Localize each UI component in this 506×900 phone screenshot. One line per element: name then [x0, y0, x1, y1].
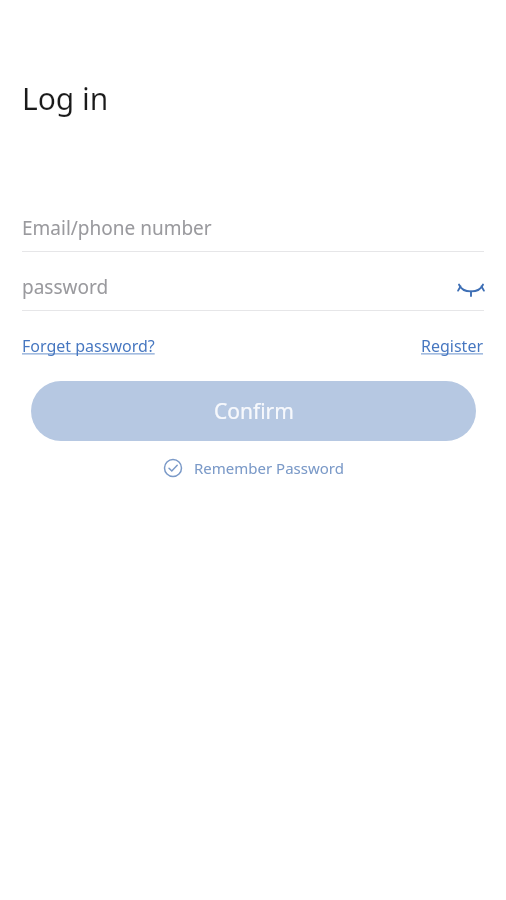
button[interactable]: Forget password? [22, 335, 155, 357]
button[interactable]: Confirm [31, 381, 476, 441]
button[interactable]: Email/phone number [0, 205, 506, 251]
button[interactable]: password [0, 264, 506, 310]
staticText: Register [421, 335, 484, 357]
staticText: Email/phone number [22, 215, 212, 241]
button[interactable]: Register [421, 335, 484, 357]
staticText: Forget password? [22, 335, 155, 357]
staticText: password [22, 274, 454, 300]
button[interactable]: Remember Password [158, 454, 348, 482]
button[interactable]: Show password [454, 270, 488, 304]
staticText: Remember Password [194, 458, 344, 478]
staticText: Log in [22, 78, 109, 119]
staticText: Confirm [214, 397, 294, 426]
